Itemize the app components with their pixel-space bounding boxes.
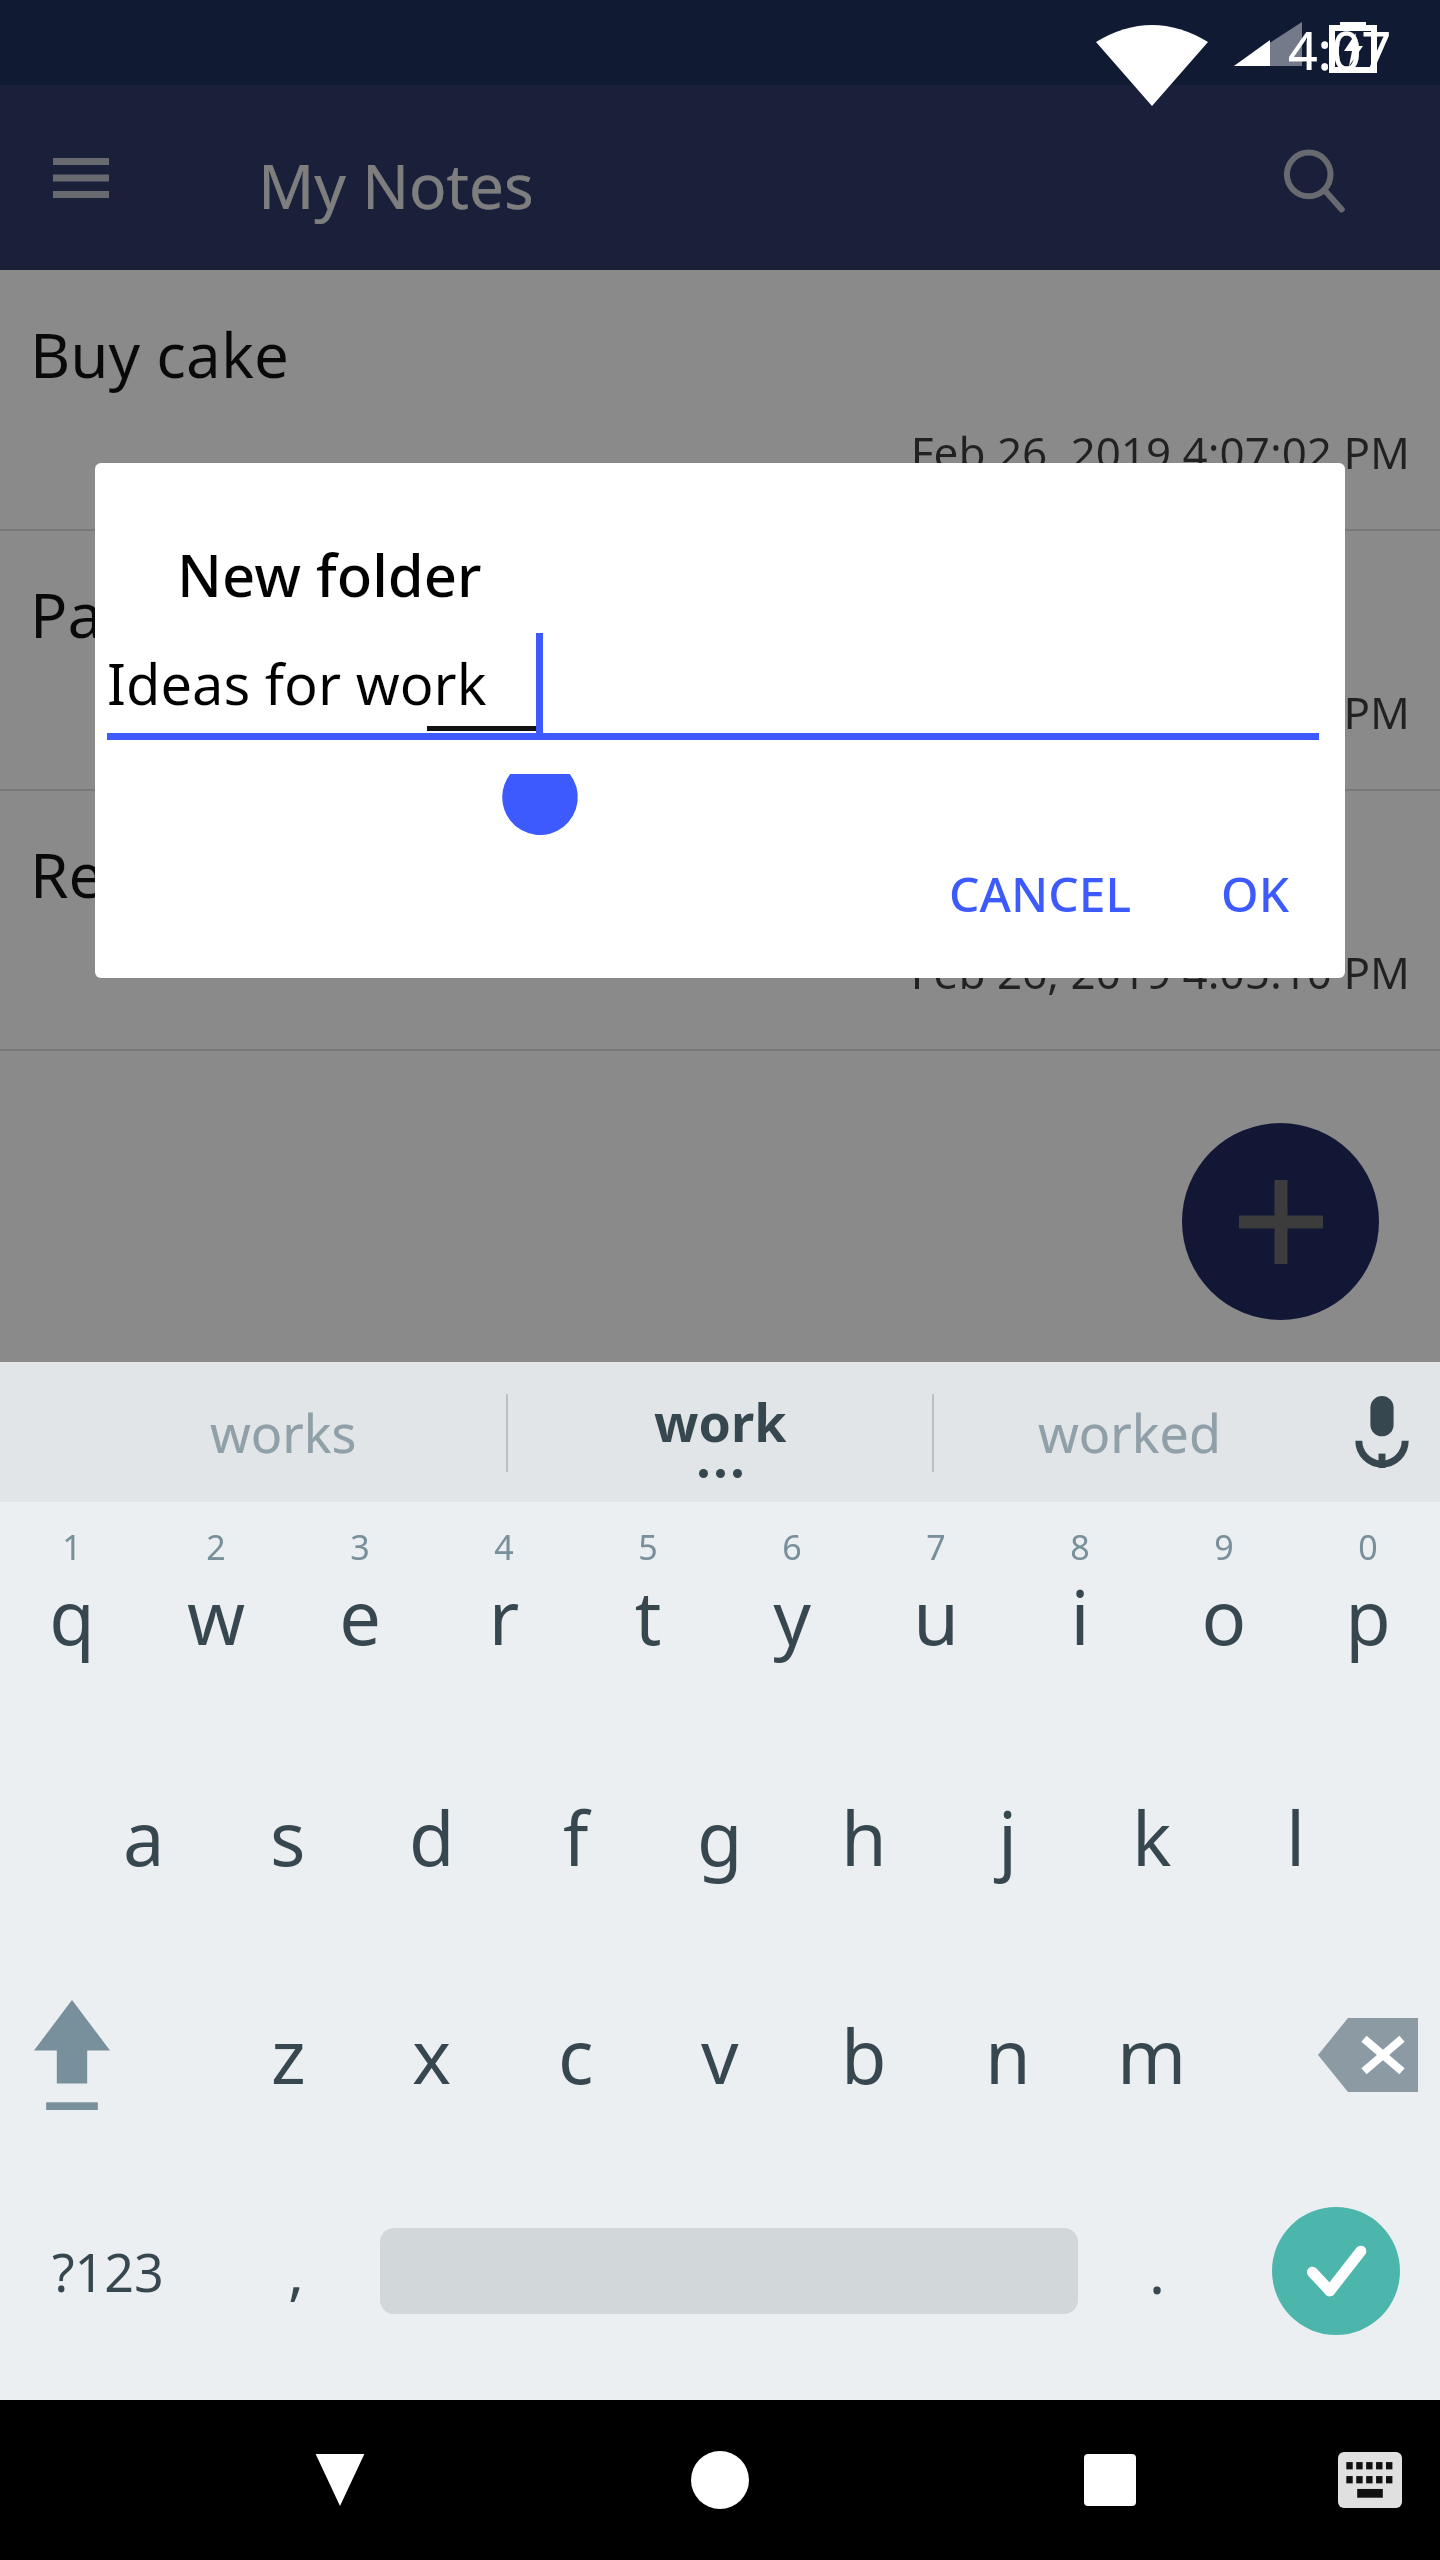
- staticText: 4: [432, 1524, 576, 1570]
- staticText: l: [1286, 1787, 1306, 1888]
- staticText: g: [697, 1787, 743, 1888]
- button[interactable]: 2: [144, 1514, 288, 1720]
- staticText: s: [270, 1787, 306, 1888]
- staticText: d: [409, 1787, 455, 1888]
- staticText: Reminder: [30, 832, 315, 916]
- staticText: ?123: [52, 2236, 164, 2307]
- button[interactable]: c: [504, 1952, 648, 2158]
- staticText: Feb 26, 2019 4:05:10 PM: [0, 942, 1410, 1002]
- staticText: 7: [864, 1524, 1008, 1570]
- button[interactable]: works: [60, 1362, 506, 1502]
- button[interactable]: worked: [934, 1362, 1324, 1502]
- button[interactable]: 7: [864, 1514, 1008, 1720]
- button[interactable]: Space: [376, 2168, 1082, 2374]
- button[interactable]: Packing list: [0, 530, 1440, 790]
- staticText: f: [563, 1787, 589, 1888]
- staticText: p: [1296, 1566, 1440, 1667]
- staticText: v: [701, 2005, 739, 2106]
- button[interactable]: h: [792, 1734, 936, 1940]
- staticText: 9: [1152, 1524, 1296, 1570]
- button[interactable]: a: [72, 1734, 216, 1940]
- button[interactable]: ,: [216, 2168, 376, 2374]
- button[interactable]: Voice input: [1324, 1362, 1440, 1502]
- button[interactable]: Search: [1268, 135, 1360, 227]
- button[interactable]: b: [792, 1952, 936, 2158]
- button[interactable]: j: [936, 1734, 1080, 1940]
- staticText: 3: [288, 1524, 432, 1570]
- button[interactable]: 3: [288, 1514, 432, 1720]
- staticText: a: [123, 1787, 165, 1888]
- button[interactable]: v: [648, 1952, 792, 2158]
- staticText: 5: [576, 1524, 720, 1570]
- button[interactable]: Backspace: [1296, 1952, 1440, 2158]
- staticText: Buy cake: [30, 312, 289, 396]
- staticText: Feb 26, 2019 4:06:41 PM: [0, 682, 1410, 742]
- staticText: Packing list: [30, 572, 358, 656]
- button[interactable]: g: [648, 1734, 792, 1940]
- staticText: 2: [144, 1524, 288, 1570]
- button[interactable]: f: [504, 1734, 648, 1940]
- button[interactable]: .: [1082, 2168, 1232, 2374]
- staticText: e: [288, 1566, 432, 1667]
- button[interactable]: 4: [432, 1514, 576, 1720]
- staticText: 4:07: [1288, 14, 1392, 85]
- button[interactable]: work: [508, 1362, 932, 1502]
- staticText: 8: [1008, 1524, 1152, 1570]
- staticText: o: [1152, 1566, 1296, 1667]
- button[interactable]: ?123: [0, 2168, 216, 2374]
- staticText: works: [210, 1397, 357, 1468]
- button[interactable]: Shift: [0, 1952, 144, 2158]
- button[interactable]: z: [216, 1952, 360, 2158]
- button[interactable]: OK: [1185, 838, 1325, 948]
- button[interactable]: Done: [1232, 2168, 1440, 2374]
- staticText: 1: [0, 1524, 144, 1570]
- staticText: m: [1117, 2005, 1187, 2106]
- staticText: CANCEL: [949, 861, 1132, 926]
- staticText: x: [412, 2005, 452, 2106]
- staticText: h: [841, 1787, 887, 1888]
- staticText: y: [720, 1566, 864, 1667]
- staticText: k: [1132, 1787, 1172, 1888]
- staticText: z: [271, 2005, 306, 2106]
- button[interactable]: Switch keyboard: [1300, 2400, 1440, 2560]
- staticText: n: [985, 2005, 1031, 2106]
- staticText: u: [864, 1566, 1008, 1667]
- button[interactable]: m: [1080, 1952, 1224, 2158]
- staticText: .: [1149, 2230, 1166, 2312]
- button[interactable]: Add note: [1182, 1123, 1379, 1320]
- staticText: Ideas for work: [107, 645, 487, 721]
- button[interactable]: s: [216, 1734, 360, 1940]
- button[interactable]: 5: [576, 1514, 720, 1720]
- button[interactable]: 9: [1152, 1514, 1296, 1720]
- button[interactable]: Recent apps: [1020, 2400, 1200, 2560]
- button[interactable]: x: [360, 1952, 504, 2158]
- button[interactable]: d: [360, 1734, 504, 1940]
- staticText: r: [432, 1566, 576, 1667]
- staticText: ,: [288, 2230, 305, 2312]
- button[interactable]: Buy cake: [0, 270, 1440, 530]
- staticText: t: [576, 1566, 720, 1667]
- button[interactable]: 8: [1008, 1514, 1152, 1720]
- staticText: My Notes: [258, 143, 534, 227]
- button[interactable]: Home: [630, 2400, 810, 2560]
- staticText: 6: [720, 1524, 864, 1570]
- button[interactable]: Reminder: [0, 790, 1440, 1050]
- button[interactable]: l: [1224, 1734, 1368, 1940]
- button[interactable]: k: [1080, 1734, 1224, 1940]
- staticText: i: [1008, 1566, 1152, 1667]
- button[interactable]: 0: [1296, 1514, 1440, 1720]
- staticText: New folder: [177, 535, 482, 614]
- staticText: 0: [1296, 1524, 1440, 1570]
- button[interactable]: Open navigation drawer: [38, 135, 124, 221]
- staticText: work: [654, 1386, 787, 1457]
- staticText: OK: [1221, 861, 1289, 926]
- staticText: q: [0, 1566, 144, 1667]
- button[interactable]: 1: [0, 1514, 144, 1720]
- button[interactable]: CANCEL: [915, 838, 1165, 948]
- button[interactable]: n: [936, 1952, 1080, 2158]
- staticText: j: [998, 1787, 1018, 1888]
- staticText: c: [558, 2005, 594, 2106]
- button[interactable]: 6: [720, 1514, 864, 1720]
- staticText: worked: [1038, 1397, 1221, 1468]
- button[interactable]: Back: [250, 2400, 430, 2560]
